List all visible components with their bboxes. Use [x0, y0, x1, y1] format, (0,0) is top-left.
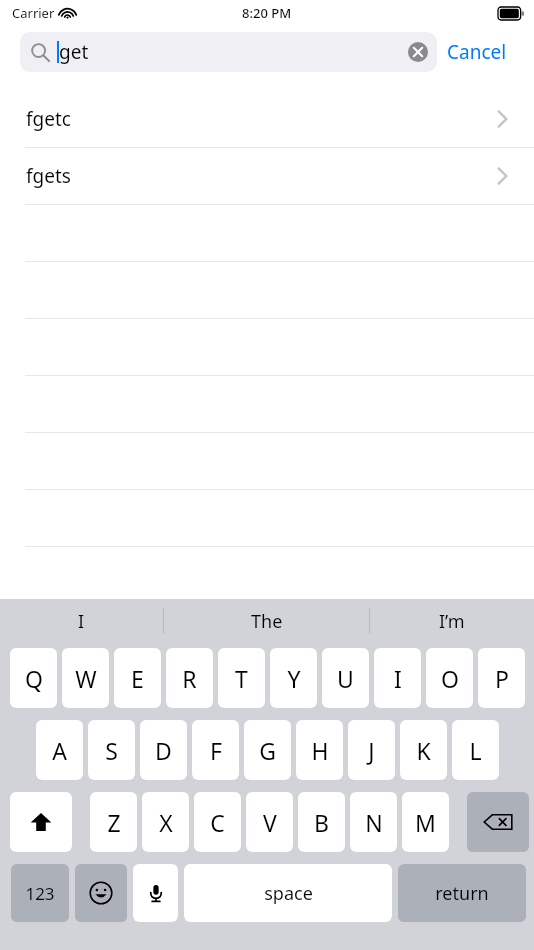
button[interactable]: I: [374, 647, 421, 708]
staticText: M: [415, 807, 436, 838]
button[interactable]: space: [184, 863, 392, 922]
button[interactable]: P: [478, 647, 525, 708]
button[interactable]: F: [192, 719, 239, 780]
staticText: X: [159, 807, 173, 838]
button[interactable]: O: [426, 647, 473, 708]
button[interactable]: Z: [90, 791, 137, 852]
staticText: 8:20 PM: [242, 4, 292, 22]
staticText: get: [59, 39, 89, 65]
staticText: I: [78, 609, 85, 634]
button[interactable]: Cancel: [437, 32, 517, 72]
button[interactable]: Numbers: [11, 863, 69, 922]
staticText: Y: [287, 663, 301, 694]
staticText: space: [264, 881, 313, 906]
staticText: I’m: [439, 609, 465, 634]
button[interactable]: fgetc: [0, 91, 534, 147]
staticText: fgets: [26, 163, 71, 189]
button[interactable]: return: [398, 863, 526, 922]
button[interactable]: Dictation: [133, 863, 178, 922]
button[interactable]: H: [296, 719, 343, 780]
staticText: A: [52, 735, 67, 766]
staticText: Cancel: [447, 39, 507, 65]
staticText: fgetc: [26, 106, 71, 132]
staticText: T: [235, 663, 248, 694]
staticText: The: [251, 609, 283, 634]
staticText: Z: [107, 807, 121, 838]
button[interactable]: The: [164, 599, 369, 643]
staticText: O: [441, 663, 459, 694]
staticText: Carrier: [12, 4, 55, 22]
button[interactable]: G: [244, 719, 291, 780]
button[interactable]: Y: [270, 647, 317, 708]
staticText: C: [210, 807, 225, 838]
staticText: return: [435, 881, 489, 906]
button[interactable]: W: [62, 647, 109, 708]
staticText: N: [365, 807, 383, 838]
button[interactable]: I: [0, 599, 163, 643]
button[interactable]: Emoji: [75, 863, 127, 922]
button[interactable]: Shift: [10, 791, 72, 852]
button[interactable]: X: [142, 791, 189, 852]
button[interactable]: Clear text: [401, 35, 435, 69]
staticText: F: [210, 735, 222, 766]
staticText: B: [314, 807, 329, 838]
staticText: U: [337, 663, 354, 694]
staticText: Q: [25, 663, 43, 694]
staticText: 123: [25, 882, 55, 905]
button[interactable]: A: [36, 719, 83, 780]
button[interactable]: U: [322, 647, 369, 708]
button[interactable]: get: [20, 32, 437, 72]
staticText: E: [131, 663, 144, 694]
staticText: I: [394, 663, 402, 694]
button[interactable]: B: [298, 791, 345, 852]
button[interactable]: K: [400, 719, 447, 780]
staticText: K: [416, 735, 431, 766]
button[interactable]: M: [402, 791, 449, 852]
staticText: D: [155, 735, 172, 766]
staticText: G: [259, 735, 276, 766]
staticText: L: [469, 735, 482, 766]
button[interactable]: Q: [10, 647, 57, 708]
staticText: V: [263, 807, 277, 838]
button[interactable]: D: [140, 719, 187, 780]
staticText: S: [105, 735, 118, 766]
button[interactable]: N: [350, 791, 397, 852]
staticText: P: [495, 663, 509, 694]
button[interactable]: fgets: [0, 148, 534, 204]
staticText: J: [368, 735, 375, 766]
button[interactable]: E: [114, 647, 161, 708]
button[interactable]: T: [218, 647, 265, 708]
button[interactable]: Delete: [467, 791, 529, 852]
staticText: W: [75, 663, 97, 694]
button[interactable]: V: [246, 791, 293, 852]
staticText: R: [182, 663, 197, 694]
button[interactable]: R: [166, 647, 213, 708]
button[interactable]: S: [88, 719, 135, 780]
button[interactable]: C: [194, 791, 241, 852]
button[interactable]: L: [452, 719, 499, 780]
button[interactable]: J: [348, 719, 395, 780]
staticText: H: [311, 735, 329, 766]
button[interactable]: I’m: [370, 599, 534, 643]
